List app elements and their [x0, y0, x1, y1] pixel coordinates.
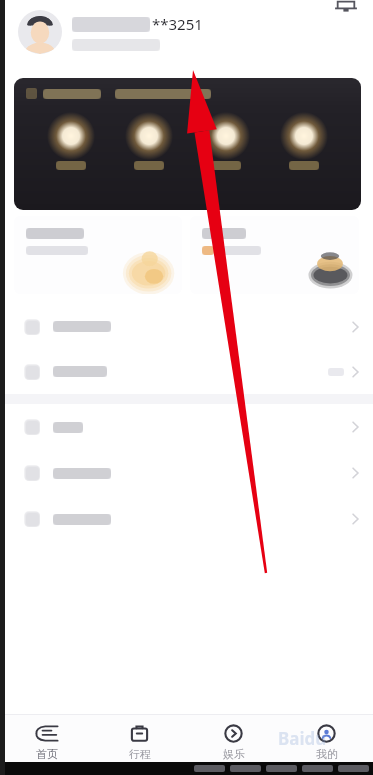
button[interactable] [0, 496, 373, 542]
button[interactable]: Notifications [333, 0, 359, 20]
button[interactable]: 首页 [0, 714, 93, 762]
button[interactable] [0, 349, 373, 394]
staticText: 首页 [36, 747, 58, 761]
staticText: 我的 [316, 747, 338, 761]
button[interactable]: **3251 [18, 10, 203, 54]
button[interactable]: 娱乐 [187, 714, 280, 762]
button[interactable] [47, 112, 95, 170]
button[interactable] [14, 78, 361, 210]
staticText: Baidu [278, 727, 327, 750]
button[interactable] [202, 112, 250, 170]
button[interactable] [0, 450, 373, 496]
staticText: 娱乐 [223, 747, 245, 761]
staticText: 行程 [129, 747, 151, 761]
button[interactable] [0, 404, 373, 450]
button[interactable]: 行程 [93, 714, 186, 762]
button[interactable] [14, 216, 182, 294]
staticText: **3251 [152, 14, 203, 34]
button[interactable] [0, 304, 373, 349]
button[interactable] [280, 112, 328, 170]
button[interactable]: 我的 [280, 714, 373, 762]
button[interactable] [125, 112, 173, 170]
button[interactable] [190, 216, 359, 294]
